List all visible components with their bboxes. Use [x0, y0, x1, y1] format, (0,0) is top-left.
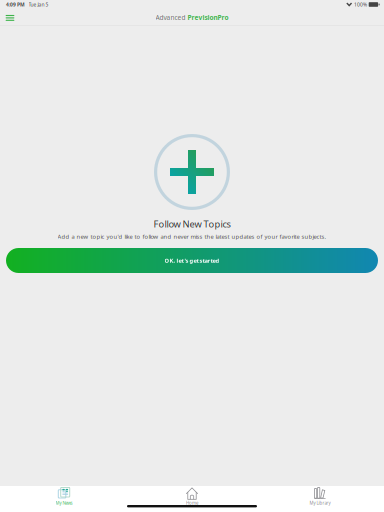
button[interactable]: My News [0, 487, 128, 512]
staticText: PrevisionPro [187, 13, 228, 22]
button[interactable]: OK, let's get started [6, 248, 378, 273]
staticText: 100% [354, 1, 367, 8]
staticText: 4:09 PM [6, 1, 25, 8]
staticText: Tue Jan 5 [28, 1, 48, 8]
staticText: Advanced [156, 13, 186, 22]
staticText: Home [186, 500, 198, 506]
button[interactable]: My Library [256, 487, 384, 512]
staticText: My News [55, 500, 72, 506]
staticText: My Library [309, 500, 330, 506]
button[interactable]: Home [128, 487, 256, 512]
staticText: Add a new topic you'd like to follow and… [57, 233, 326, 240]
staticText: OK, let's get started [164, 257, 219, 264]
staticText: Follow New Topics [153, 218, 230, 230]
button[interactable]: Menu [0, 9, 20, 26]
